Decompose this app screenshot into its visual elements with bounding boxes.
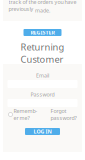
staticText: made. bbox=[35, 7, 50, 14]
staticText: Returning Customer bbox=[20, 41, 64, 65]
staticText: Email bbox=[36, 72, 49, 79]
staticText: Password bbox=[30, 91, 54, 98]
button[interactable]: Remember me? bbox=[8, 107, 37, 122]
staticText: LOG IN bbox=[33, 128, 51, 135]
staticText: REGISTER bbox=[30, 29, 54, 36]
staticText: Forgot password? bbox=[50, 107, 76, 122]
button[interactable]: Forgot password? bbox=[50, 107, 76, 122]
button[interactable]: LOG IN bbox=[25, 128, 60, 135]
button[interactable]: REGISTER bbox=[23, 29, 61, 36]
staticText: track of the orders you have previously bbox=[8, 0, 76, 13]
staticText: Remember me? bbox=[13, 107, 37, 122]
